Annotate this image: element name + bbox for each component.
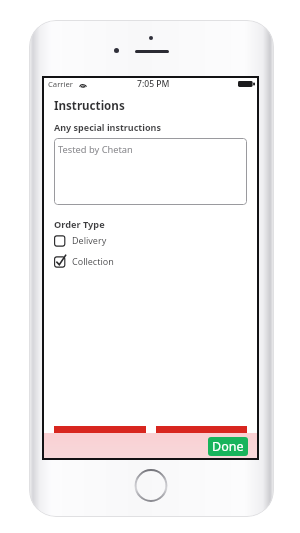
staticText: Any special instructions (54, 121, 161, 133)
staticText: Delivery (72, 234, 107, 246)
staticText: Tested by Chetan (58, 143, 133, 156)
staticText: Collection (72, 255, 114, 267)
staticText: Carrier (48, 79, 74, 89)
button[interactable]: Delivery (54, 235, 247, 247)
button[interactable]: Collection (54, 256, 247, 268)
staticText: 7:05 PM (137, 78, 170, 90)
staticText: Instructions (54, 98, 125, 114)
button[interactable]: Done (208, 437, 248, 456)
other: Wi-Fi signal (79, 81, 87, 88)
button[interactable]: Tested by Chetan (54, 138, 247, 205)
staticText: Order Type (54, 218, 105, 231)
staticText: Done (212, 438, 244, 455)
